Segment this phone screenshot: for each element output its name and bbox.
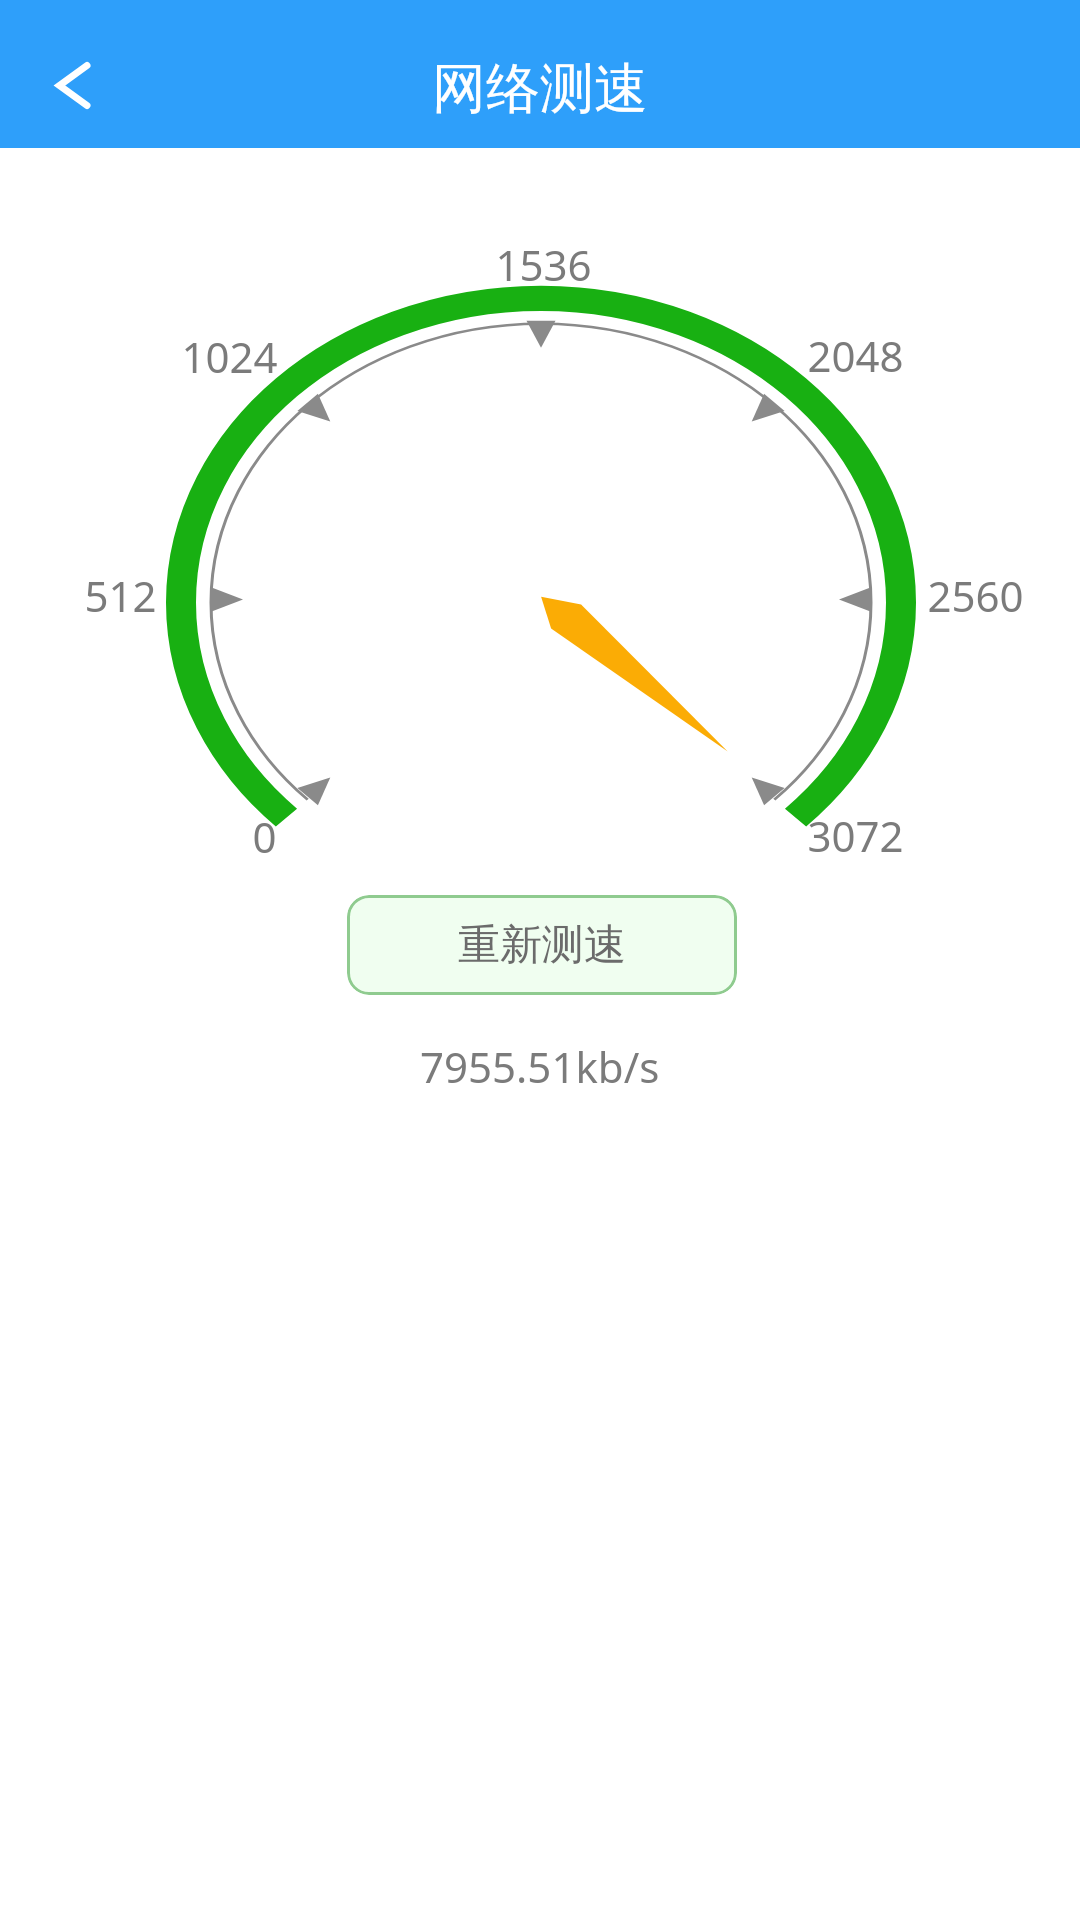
staticText: 2560 <box>927 567 1024 624</box>
staticText: 1536 <box>495 236 592 293</box>
staticText: 7955.51kb/s <box>420 1038 660 1095</box>
staticText: 1024 <box>181 328 278 385</box>
button[interactable]: Back <box>12 26 108 122</box>
staticText: 0 <box>252 808 277 865</box>
button[interactable]: 重新测速 <box>347 895 737 995</box>
staticText: 512 <box>84 567 157 624</box>
staticText: 重新测速 <box>458 919 626 972</box>
staticText: 3072 <box>807 807 904 864</box>
staticText: 网络测速 <box>432 55 648 123</box>
staticText: 2048 <box>807 327 904 384</box>
